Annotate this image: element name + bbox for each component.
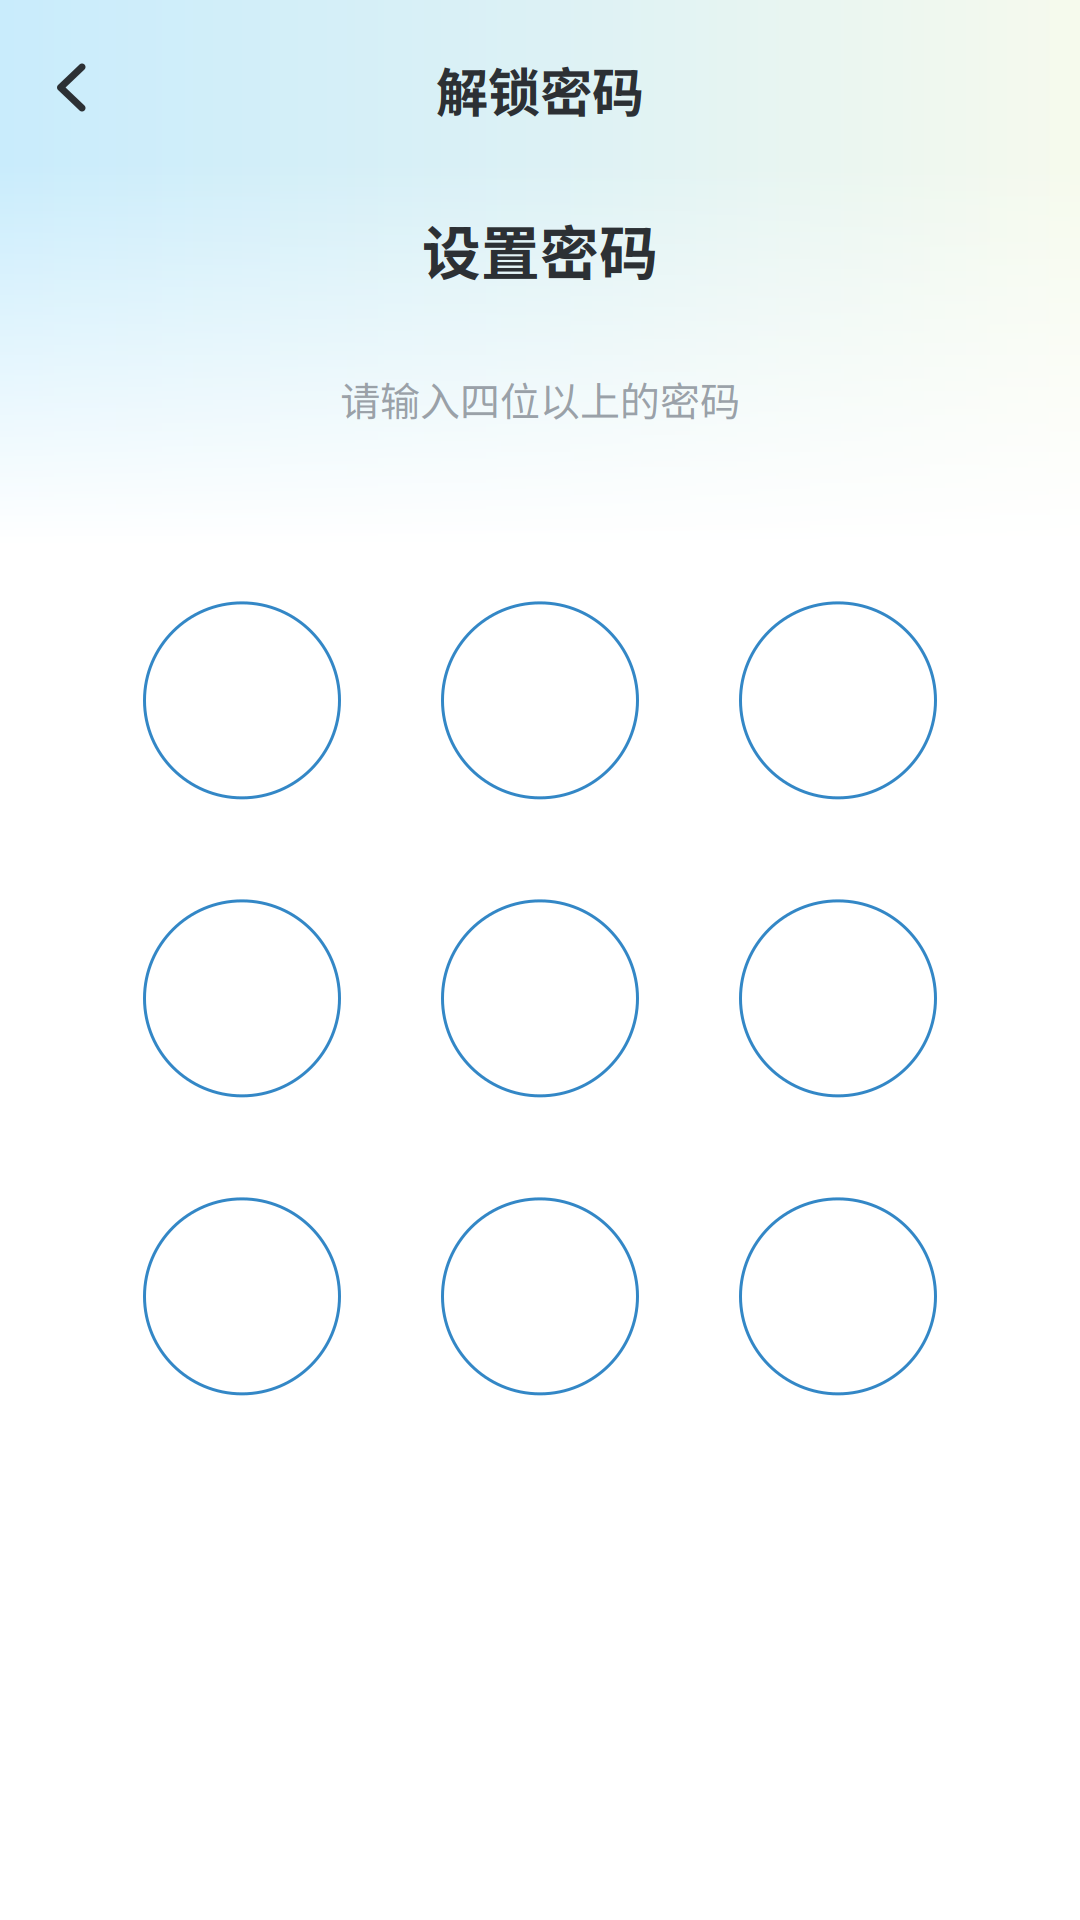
button[interactable]: 密码点 6 xyxy=(740,901,935,1096)
staticText: 请输入四位以上的密码 xyxy=(340,370,740,428)
button[interactable]: 密码点 7 xyxy=(144,1199,339,1394)
staticText: 设置密码 xyxy=(422,207,658,292)
button[interactable]: 密码点 2 xyxy=(442,603,637,798)
button[interactable]: 密码点 9 xyxy=(740,1199,935,1394)
button[interactable]: 密码点 8 xyxy=(442,1199,637,1394)
button[interactable]: 返回 xyxy=(0,34,110,144)
staticText: 解锁密码 xyxy=(436,51,644,127)
button[interactable]: 密码点 4 xyxy=(144,901,339,1096)
button[interactable]: 密码点 5 xyxy=(442,901,637,1096)
button[interactable]: 密码点 3 xyxy=(740,603,935,798)
button[interactable]: 密码点 1 xyxy=(144,603,339,798)
